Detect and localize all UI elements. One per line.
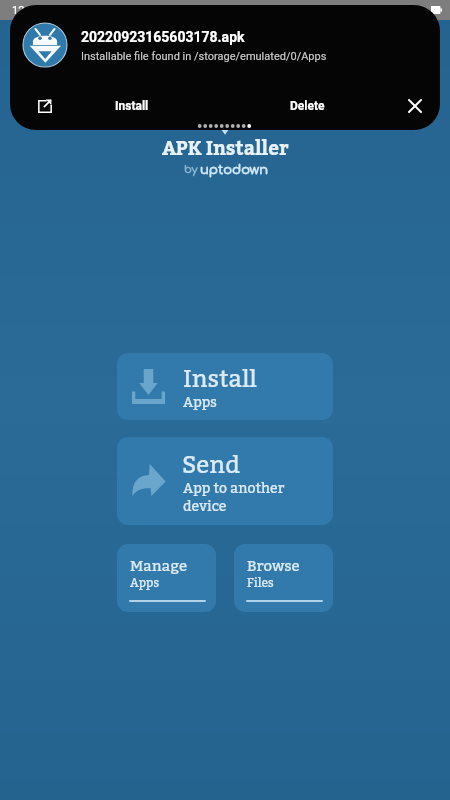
button[interactable]: Dismiss <box>393 90 436 122</box>
staticText: Send <box>182 441 240 489</box>
staticText: 20220923165603178.apk <box>81 29 245 45</box>
staticText: Apps <box>130 571 160 595</box>
staticText: Install <box>183 355 257 403</box>
staticText: Apps <box>183 389 217 417</box>
button[interactable]: Browse <box>234 544 333 612</box>
button[interactable]: Open in new window <box>22 90 68 122</box>
staticText: APK Installer <box>162 130 289 168</box>
staticText: Browse <box>247 551 300 581</box>
staticText: Install <box>115 99 149 113</box>
staticText: device <box>183 493 227 521</box>
button[interactable]: Delete <box>265 90 349 122</box>
button[interactable]: Send <box>117 437 333 525</box>
staticText: 12:45 <box>12 4 40 17</box>
staticText: by <box>184 163 198 175</box>
button[interactable]: Install <box>117 353 333 420</box>
staticText: Delete <box>290 99 325 113</box>
button[interactable]: Manage <box>117 544 216 612</box>
staticText: Files <box>247 571 274 595</box>
staticText: Manage <box>130 551 188 581</box>
button[interactable]: Install <box>90 90 174 122</box>
staticText: uptodown <box>200 163 269 177</box>
staticText: App to another <box>183 475 285 503</box>
staticText: Installable file found in /storage/emula… <box>81 50 327 63</box>
